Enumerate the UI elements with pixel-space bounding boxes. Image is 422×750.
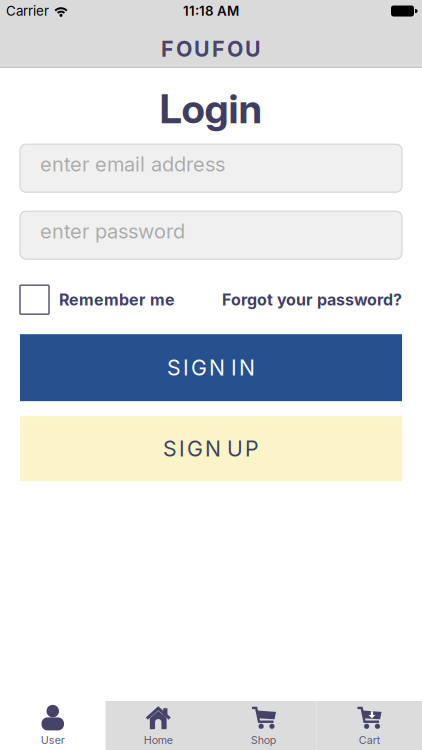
button[interactable]: Cart: [316, 701, 422, 750]
staticText: Home: [144, 734, 173, 746]
button[interactable]: enter password: [20, 211, 402, 259]
staticText: User: [41, 734, 65, 746]
button[interactable]: S I G N U P: [20, 416, 402, 481]
staticText: Shop: [251, 734, 277, 746]
button[interactable]: enter email address: [20, 144, 402, 192]
staticText: F O U F O U: [161, 36, 261, 62]
staticText: enter password: [40, 219, 185, 243]
button[interactable]: Home: [105, 701, 211, 750]
staticText: Cart: [359, 734, 380, 746]
staticText: Forgot your password?: [222, 290, 402, 309]
staticText: Remember me: [59, 290, 175, 309]
staticText: enter email address: [40, 152, 225, 176]
button[interactable]: Forgot your password?: [222, 290, 402, 309]
staticText: S I G N I N: [167, 355, 255, 380]
button[interactable]: User: [0, 701, 105, 750]
staticText: Login: [159, 85, 262, 132]
button[interactable]: S I G N I N: [20, 334, 402, 401]
staticText: Carrier: [6, 3, 49, 19]
staticText: S I G N U P: [163, 436, 259, 461]
staticText: 11:18 AM: [183, 3, 239, 19]
button[interactable]: Shop: [211, 701, 316, 750]
button[interactable]: Remember me: [20, 285, 175, 314]
